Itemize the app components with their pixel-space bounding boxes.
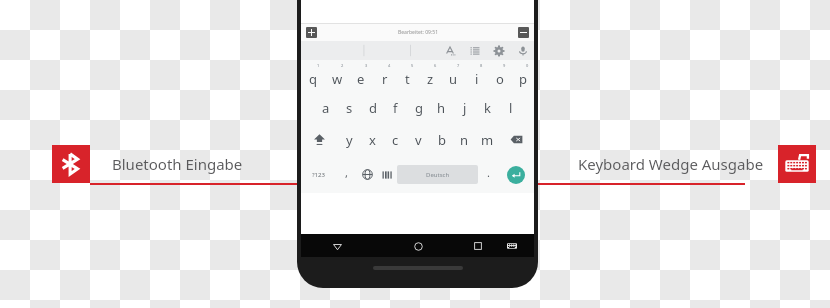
button[interactable]: a <box>314 93 338 123</box>
staticText: m <box>481 131 494 149</box>
staticText: Keyboard Wedge Ausgabe <box>578 154 764 174</box>
staticText: b <box>438 131 446 149</box>
button[interactable]: j <box>453 93 476 123</box>
staticText: 5 <box>411 63 414 68</box>
staticText: 6 <box>434 63 437 68</box>
button[interactable]: Remove <box>518 27 529 38</box>
button[interactable]: s <box>338 93 361 123</box>
staticText: 4 <box>388 63 391 68</box>
staticText: d <box>369 99 377 117</box>
staticText: k <box>484 99 491 117</box>
staticText: 9 <box>503 63 506 68</box>
button[interactable]: , <box>336 156 357 193</box>
button[interactable]: y <box>337 123 361 156</box>
staticText: Bluetooth Eingabe <box>112 154 243 174</box>
button[interactable]: 2 <box>325 60 349 93</box>
button[interactable]: v <box>407 123 430 156</box>
button[interactable]: ?123 <box>301 156 336 193</box>
button[interactable]: Scan <box>377 156 397 193</box>
staticText: a <box>322 99 330 117</box>
button[interactable]: Settings <box>493 45 504 56</box>
button[interactable]: g <box>407 93 430 123</box>
staticText: , <box>345 165 348 180</box>
staticText: o <box>496 70 504 88</box>
button[interactable]: Bluetooth <box>52 145 90 183</box>
button[interactable]: n <box>453 123 476 156</box>
button[interactable]: Change language <box>357 156 377 193</box>
button[interactable]: b <box>430 123 453 156</box>
staticText: z <box>427 70 434 88</box>
staticText: w <box>332 70 343 88</box>
button[interactable]: 4 <box>373 60 396 93</box>
button[interactable]: Switch keyboard <box>504 238 520 254</box>
staticText: r <box>382 70 388 88</box>
staticText: u <box>449 70 458 88</box>
button[interactable]: f <box>384 93 407 123</box>
staticText: 1 <box>317 63 320 68</box>
staticText: y <box>346 131 353 149</box>
button[interactable]: Text formatting <box>445 45 456 56</box>
button[interactable]: 1 <box>301 60 325 93</box>
staticText: Deutsch <box>426 171 450 179</box>
staticText: q <box>309 70 317 88</box>
staticText: i <box>475 70 479 88</box>
button[interactable]: m <box>476 123 499 156</box>
staticText: 0 <box>526 63 529 68</box>
button[interactable]: Enter <box>498 156 534 193</box>
staticText: j <box>463 99 467 117</box>
staticText: Bearbeitet: 09:51 <box>398 29 438 36</box>
button[interactable]: 9 <box>488 60 511 93</box>
button[interactable]: x <box>361 123 384 156</box>
staticText: 7 <box>457 63 460 68</box>
staticText: l <box>509 99 513 117</box>
staticText: t <box>405 70 410 88</box>
button[interactable]: 8 <box>465 60 488 93</box>
button[interactable]: c <box>384 123 407 156</box>
button[interactable]: 5 <box>396 60 419 93</box>
staticText: g <box>415 99 423 117</box>
button[interactable]: h <box>430 93 453 123</box>
button[interactable]: l <box>499 93 522 123</box>
staticText: h <box>437 99 446 117</box>
button[interactable]: 7 <box>442 60 465 93</box>
button[interactable]: Keyboard Wedge <box>778 145 816 183</box>
button[interactable]: Add <box>306 27 317 38</box>
button[interactable]: k <box>476 93 499 123</box>
button[interactable]: Home <box>410 238 426 254</box>
staticText: c <box>392 131 399 149</box>
staticText: 8 <box>480 63 483 68</box>
button[interactable]: . <box>478 156 498 193</box>
button[interactable]: Shift <box>301 123 337 156</box>
button[interactable]: Back <box>329 238 345 254</box>
staticText: p <box>519 70 527 88</box>
button[interactable]: 3 <box>349 60 373 93</box>
staticText: ?123 <box>312 171 325 179</box>
button[interactable]: Backspace <box>499 123 534 156</box>
staticText: . <box>487 165 490 180</box>
button[interactable]: Clipboard <box>469 45 480 56</box>
staticText: v <box>415 131 422 149</box>
button[interactable]: d <box>361 93 384 123</box>
button[interactable]: Recent apps <box>470 238 486 254</box>
staticText: 3 <box>365 63 368 68</box>
button[interactable]: 0 <box>511 60 534 93</box>
staticText: s <box>346 99 353 117</box>
staticText: 2 <box>341 63 344 68</box>
staticText: f <box>393 99 398 117</box>
staticText: e <box>357 70 365 88</box>
staticText: x <box>369 131 376 149</box>
button[interactable]: Deutsch <box>397 165 478 184</box>
button[interactable]: Voice input <box>517 45 528 56</box>
staticText: n <box>460 131 469 149</box>
button[interactable]: 6 <box>419 60 442 93</box>
